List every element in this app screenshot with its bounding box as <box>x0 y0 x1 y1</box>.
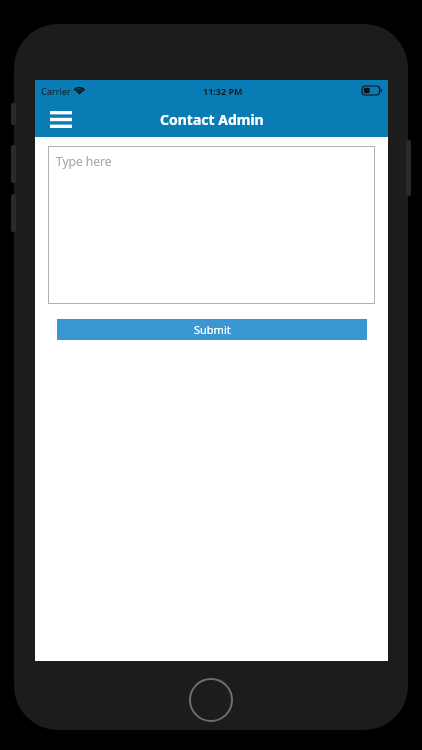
button[interactable]: Home <box>189 678 233 722</box>
staticText: 11:32 PM <box>203 85 243 97</box>
staticText: Type here <box>56 153 112 169</box>
button[interactable]: Submit <box>57 319 367 340</box>
button[interactable]: Open navigation menu <box>47 105 75 133</box>
staticText: Contact Admin <box>160 110 264 129</box>
staticText: Carrier <box>41 85 71 97</box>
staticText: Submit <box>194 322 231 337</box>
button[interactable]: Type here <box>48 146 375 304</box>
